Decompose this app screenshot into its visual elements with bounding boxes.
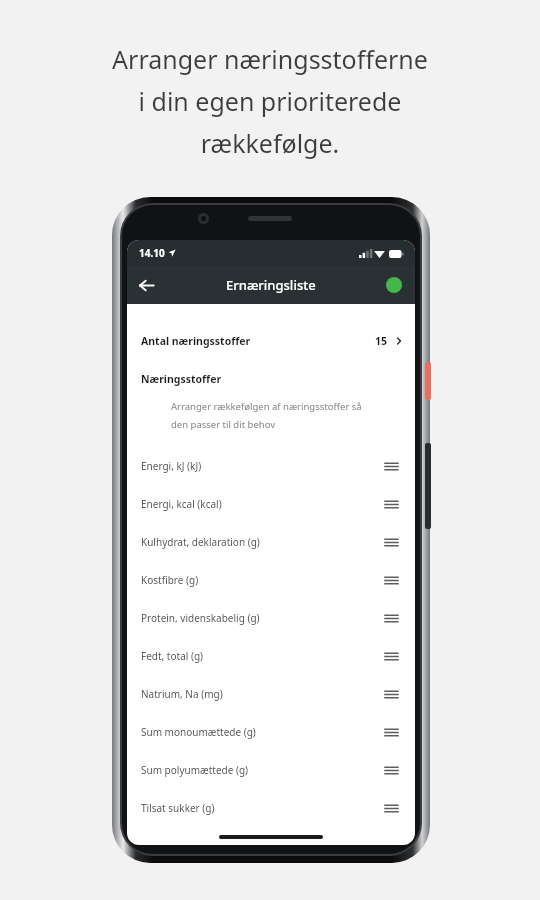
staticText: den passer til dit behov: [171, 418, 276, 431]
staticText: Tilsat sukker (g): [141, 801, 215, 815]
other: Reorder Kulhydrat, deklaration (g): [381, 532, 401, 552]
staticText: Fedt, total (g): [141, 649, 204, 663]
button[interactable]: Status indicator: [381, 272, 407, 298]
button[interactable]: Sum monoumættede (g): [127, 713, 415, 751]
button[interactable]: Back: [127, 266, 165, 304]
staticText: Næringsstoffer: [141, 372, 222, 386]
staticText: Natrium, Na (mg): [141, 687, 223, 701]
button[interactable]: Fedt, total (g): [127, 637, 415, 675]
staticText: Antal næringsstoffer: [141, 334, 251, 348]
button[interactable]: Sum polyumættede (g): [127, 751, 415, 789]
staticText: rækkefølge.: [22, 126, 518, 160]
button[interactable]: Kulhydrat, deklaration (g): [127, 523, 415, 561]
staticText: Sum monoumættede (g): [141, 725, 256, 739]
staticText: Arranger næringsstofferne: [22, 42, 518, 76]
other: Reorder Sum monoumættede (g): [381, 722, 401, 742]
button[interactable]: Tilsat sukker (g): [127, 789, 415, 827]
other: Volume button: [425, 443, 431, 529]
other: Reorder Fedt, total (g): [381, 646, 401, 666]
other: Power button: [425, 362, 431, 400]
other: Reorder Energi, kJ (kJ): [381, 456, 401, 476]
button[interactable]: Protein, videnskabelig (g): [127, 599, 415, 637]
button[interactable]: Kostfibre (g): [127, 561, 415, 599]
other: Reorder Natrium, Na (mg): [381, 684, 401, 704]
staticText: Arranger rækkefølgen af næringsstoffer s…: [171, 400, 362, 413]
staticText: 14.10: [139, 246, 165, 260]
staticText: 15: [375, 334, 388, 348]
staticText: Sum polyumættede (g): [141, 763, 249, 777]
staticText: Kostfibre (g): [141, 573, 199, 587]
other: Reorder Kostfibre (g): [381, 570, 401, 590]
staticText: Energi, kcal (kcal): [141, 497, 222, 511]
button[interactable]: Natrium, Na (mg): [127, 675, 415, 713]
other: Reorder Sum polyumættede (g): [381, 760, 401, 780]
button[interactable]: Antal næringsstoffer: [127, 328, 415, 354]
button[interactable]: Energi, kcal (kcal): [127, 485, 415, 523]
staticText: Ernæringsliste: [226, 276, 316, 294]
staticText: Protein, videnskabelig (g): [141, 611, 260, 625]
staticText: Kulhydrat, deklaration (g): [141, 535, 260, 549]
other: Reorder Protein, videnskabelig (g): [381, 608, 401, 628]
button[interactable]: Energi, kJ (kJ): [127, 447, 415, 485]
staticText: i din egen prioriterede: [22, 84, 518, 118]
staticText: Energi, kJ (kJ): [141, 459, 202, 473]
other: Reorder Energi, kcal (kcal): [381, 494, 401, 514]
other: Reorder Tilsat sukker (g): [381, 798, 401, 818]
